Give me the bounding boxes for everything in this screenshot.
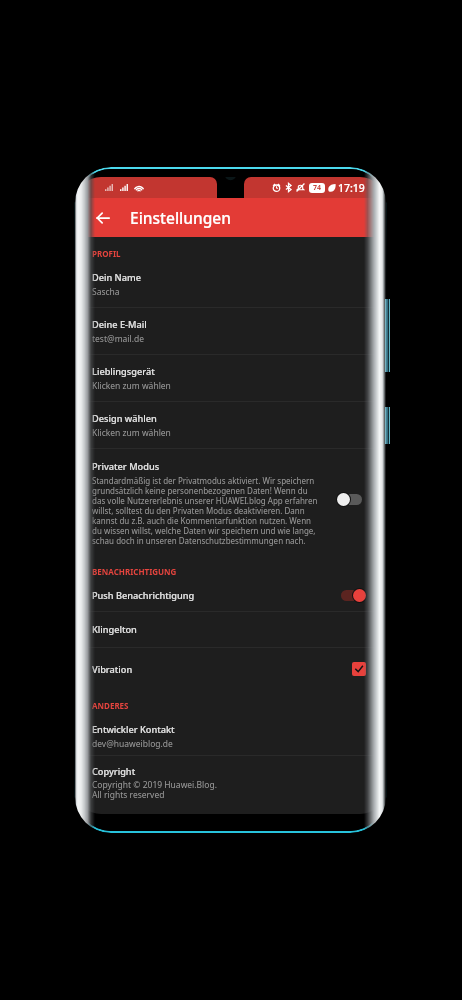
staticText: Deine E-Mail [92, 318, 147, 331]
staticText: BENACHRICHTIGUNG [92, 566, 177, 577]
staticText: Privater Modus [92, 460, 160, 473]
button[interactable]: Privater Modus [336, 491, 362, 507]
button[interactable]: Entwickler Kontakt [77, 713, 384, 755]
staticText: Einstellungen [130, 207, 231, 228]
staticText: Sascha [92, 286, 120, 298]
staticText: dev@huaweiblog.de [92, 738, 173, 750]
staticText: Design wählen [92, 412, 157, 425]
button[interactable]: Back [88, 203, 118, 233]
staticText: Standardmäßig ist der Privatmodus aktivi… [92, 475, 318, 546]
button[interactable]: Deine E-Mail [77, 308, 384, 354]
staticText: Klicken zum wählen [92, 380, 171, 392]
staticText: Entwickler Kontakt [92, 723, 175, 736]
staticText: test@mail.de [92, 333, 145, 345]
staticText: Push Benachrichtigung [92, 589, 341, 602]
staticText: ANDERES [92, 700, 129, 711]
button[interactable]: Klingelton [77, 612, 384, 647]
staticText: Copyright © 2019 Huawei.Blog. All rights… [92, 779, 217, 801]
button[interactable]: Copyright [77, 756, 384, 810]
staticText: PROFIL [92, 248, 121, 259]
staticText: Klicken zum wählen [92, 427, 171, 439]
button[interactable]: Vibration [77, 648, 384, 690]
button[interactable]: Push Benachrichtigung [341, 587, 367, 603]
button[interactable]: Vibration [352, 662, 366, 676]
staticText: Vibration [92, 663, 352, 676]
staticText: 17:19 [338, 181, 365, 195]
staticText: Lieblingsgerät [92, 365, 155, 378]
staticText: 74 [313, 183, 322, 193]
staticText: Copyright [92, 765, 136, 778]
button[interactable]: Privater Modus [77, 449, 384, 557]
button[interactable]: Dein Name [77, 261, 384, 307]
button[interactable]: Design wählen [77, 402, 384, 448]
staticText: Klingelton [92, 623, 137, 636]
staticText: Dein Name [92, 271, 141, 284]
button[interactable]: Lieblingsgerät [77, 355, 384, 401]
button[interactable]: Push Benachrichtigung [77, 579, 384, 611]
